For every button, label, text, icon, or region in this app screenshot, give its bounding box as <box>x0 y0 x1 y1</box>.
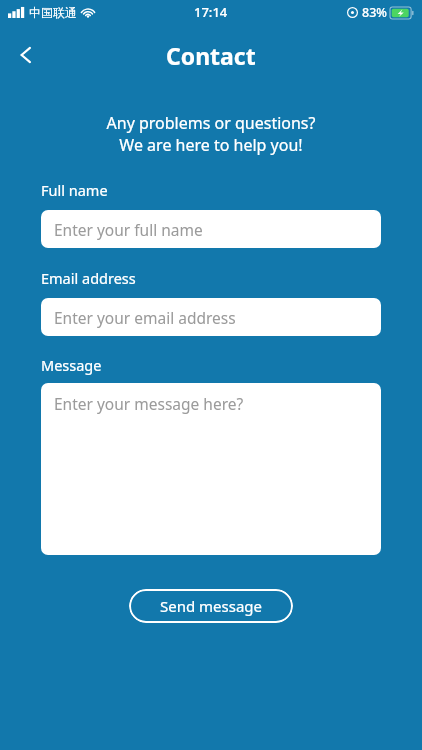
staticText: Email address <box>41 268 136 288</box>
staticText: 17:14 <box>194 3 228 21</box>
button[interactable]: Send message <box>129 589 293 623</box>
staticText: Any problems or questions? We are here t… <box>20 112 402 156</box>
staticText: 中国联通 <box>29 5 77 20</box>
staticText: Full name <box>41 180 108 200</box>
button[interactable]: Enter your message here? <box>41 383 381 555</box>
staticText: Enter your message here? <box>54 393 244 414</box>
button[interactable]: Enter your full name <box>41 210 381 248</box>
staticText: Enter your email address <box>54 307 236 328</box>
button[interactable]: Back <box>4 33 48 77</box>
staticText: Enter your full name <box>54 219 203 240</box>
button[interactable]: Enter your email address <box>41 298 381 336</box>
staticText: Send message <box>160 596 263 616</box>
staticText: 83% <box>362 4 387 21</box>
staticText: Message <box>41 355 102 375</box>
staticText: Contact <box>166 40 256 71</box>
